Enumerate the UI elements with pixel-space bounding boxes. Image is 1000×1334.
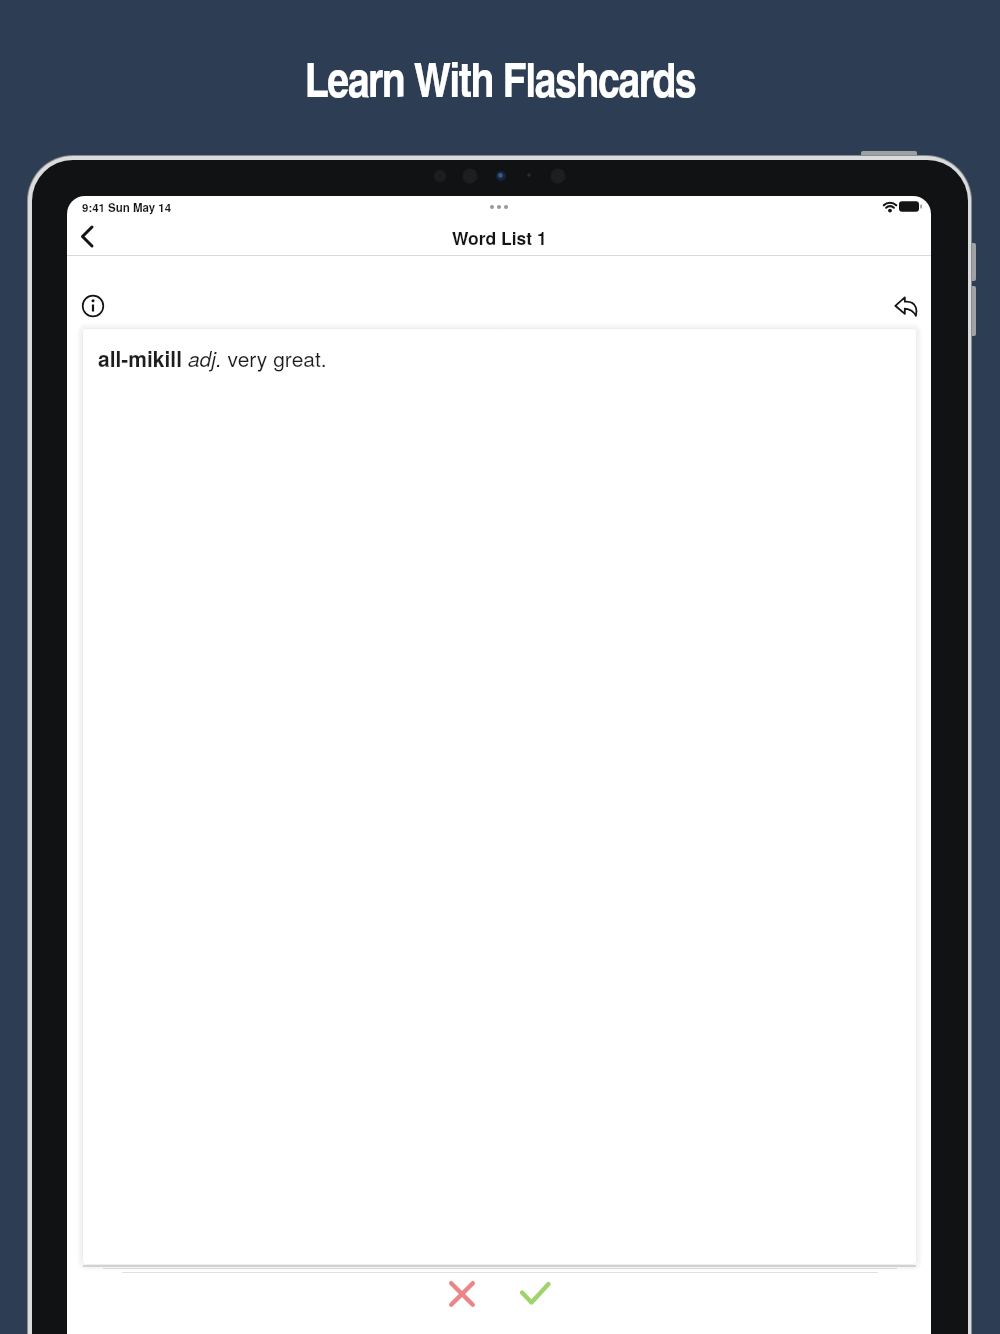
staticText: Learn With Flashcards [0, 44, 1000, 112]
button[interactable]: all-mikill adj. very great. [82, 328, 917, 1265]
button[interactable] [513, 1272, 557, 1316]
staticText: Sun May 14 [108, 199, 172, 215]
button[interactable] [68, 220, 104, 254]
staticText: Word List 1 [452, 225, 547, 250]
button[interactable] [440, 1272, 484, 1316]
staticText: all-mikill adj. very great. [98, 343, 327, 374]
button[interactable] [882, 284, 928, 328]
staticText: 9:41 [82, 199, 106, 215]
button[interactable] [73, 286, 113, 326]
